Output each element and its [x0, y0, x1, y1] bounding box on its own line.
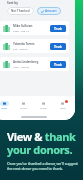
- staticText: $75 · Aug 09: [13, 47, 28, 50]
- staticText: $250 · Aug 12: [13, 29, 29, 32]
- button[interactable]: Anita Lindenberg: [0, 57, 69, 71]
- button[interactable]: Home: [0, 100, 11, 111]
- button[interactable]: Donors: [17, 100, 30, 111]
- staticText: Amount: [45, 9, 57, 13]
- button[interactable]: Yolanda Torres: [0, 39, 69, 53]
- staticText: Thank: [54, 27, 62, 31]
- staticText: Donors: [20, 107, 28, 110]
- button[interactable]: Thank: [50, 43, 66, 50]
- staticText: Sort by: [7, 1, 18, 5]
- staticText: Thank: [54, 45, 62, 49]
- button[interactable]: Thank: [50, 25, 66, 32]
- staticText: View & thank your donors.: [7, 129, 76, 157]
- staticText: Profile: [40, 107, 47, 110]
- button[interactable]: Amount: [37, 7, 61, 15]
- staticText: Inbox: [60, 107, 66, 110]
- button[interactable]: Inbox: [56, 100, 69, 111]
- staticText: Mike Sullivan: [13, 24, 33, 28]
- staticText: $400 · Aug 05: [13, 65, 29, 68]
- button[interactable]: Not Thanked: [7, 7, 34, 15]
- staticText: Not Thanked: [11, 9, 30, 13]
- button[interactable]: Profile: [37, 100, 50, 111]
- staticText: Home: [1, 107, 8, 110]
- staticText: Thank: [54, 63, 62, 67]
- staticText: Anita Lindenberg: [13, 60, 39, 64]
- staticText: Yolanda Torres: [13, 42, 35, 46]
- staticText: Once you've thanked a donor, we'll sugge…: [7, 161, 78, 171]
- button[interactable]: Thank: [50, 61, 66, 68]
- button[interactable]: Mike Sullivan: [0, 21, 69, 35]
